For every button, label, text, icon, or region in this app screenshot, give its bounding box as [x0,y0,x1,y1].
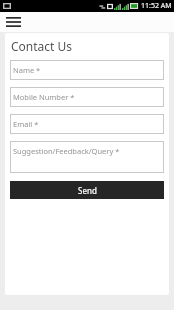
staticText: Name * [13,65,41,75]
staticText: Contact Us [11,38,73,54]
button[interactable]: Name * [10,60,164,80]
staticText: Send [78,185,97,196]
staticText: Mobile Number * [13,92,75,102]
staticText: Email * [13,119,39,129]
staticText: 11:52 AM [141,1,172,11]
button[interactable]: Send [10,181,164,199]
button[interactable]: Mobile Number * [10,87,164,107]
button[interactable]: Open navigation menu [3,12,23,32]
staticText: Suggestion/Feedback/Query * [13,146,120,156]
button[interactable]: Email * [10,114,164,134]
button[interactable]: Suggestion/Feedback/Query * [10,141,164,173]
